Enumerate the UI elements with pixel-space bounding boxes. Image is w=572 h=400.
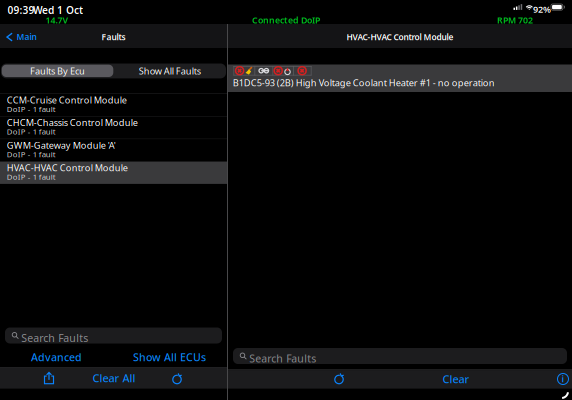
staticText: Search Faults: [21, 331, 88, 345]
button[interactable]: Advanced: [0, 349, 113, 365]
staticText: i: [561, 372, 564, 385]
staticText: Advanced: [31, 350, 82, 364]
button[interactable]: Show All ECUs: [113, 349, 226, 365]
button[interactable]: CCM-Cruise Control Module: [0, 94, 227, 116]
button[interactable]: Faults By Ecu: [2, 65, 113, 77]
button[interactable]: GWM-Gateway Module 'A': [0, 139, 227, 161]
staticText: B1DC5-93 (2B) High Voltage Coolant Heate…: [233, 76, 495, 89]
button[interactable]: HVAC-HVAC Control Module: [0, 162, 227, 184]
staticText: DoIP - 1 fault: [7, 171, 56, 182]
staticText: Faults: [101, 31, 125, 43]
button[interactable]: Refresh: [166, 372, 188, 386]
staticText: Search Faults: [249, 351, 316, 365]
button[interactable]: Main: [3, 28, 43, 44]
staticText: Faults By Ecu: [30, 65, 85, 77]
staticText: RPM 702: [497, 14, 533, 26]
staticText: HVAC-HVAC Control Module: [7, 161, 128, 174]
button[interactable]: CHCM-Chassis Control Module: [0, 117, 227, 139]
staticText: DoIP - 1 fault: [7, 104, 56, 114]
staticText: CHCM-Chassis Control Module: [7, 116, 138, 129]
button[interactable]: Info: [552, 372, 572, 386]
button[interactable]: Show All Faults: [113, 65, 226, 77]
staticText: HVAC-HVAC Control Module: [346, 31, 453, 43]
staticText: DoIP - 1 fault: [7, 149, 56, 159]
staticText: GWM-Gateway Module 'A': [7, 139, 116, 151]
staticText: 14.7V: [45, 14, 68, 26]
staticText: Wed 1 Oct: [33, 3, 83, 17]
staticText: CCM-Cruise Control Module: [7, 94, 127, 106]
staticText: Connected DoIP: [252, 14, 320, 26]
button[interactable]: Clear: [436, 371, 476, 387]
staticText: 09:39: [7, 3, 34, 17]
staticText: Show All Faults: [139, 65, 201, 77]
button[interactable]: Clear All: [84, 370, 144, 386]
staticText: Show All ECUs: [133, 350, 206, 364]
staticText: 92%: [533, 3, 551, 15]
staticText: Main: [17, 31, 37, 42]
staticText: Clear: [442, 372, 469, 386]
staticText: Clear All: [92, 371, 135, 385]
button[interactable]: Share: [38, 371, 60, 385]
staticText: DoIP - 1 fault: [7, 126, 56, 137]
button[interactable]: Refresh: [328, 372, 350, 386]
